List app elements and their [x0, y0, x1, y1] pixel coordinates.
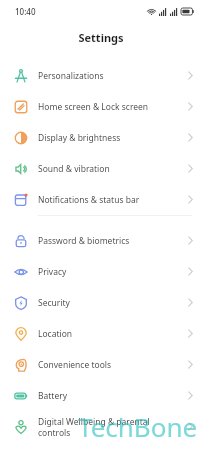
staticText: Convenience tools: [38, 359, 184, 371]
staticText: Personalizations: [38, 70, 184, 82]
button[interactable]: Location: [0, 318, 202, 349]
staticText: Location: [38, 328, 184, 340]
button[interactable]: Battery: [0, 380, 202, 411]
button[interactable]: Personalizations: [0, 60, 202, 91]
staticText: Battery: [38, 390, 184, 402]
staticText: Digital Wellbeing & parental controls: [38, 416, 184, 438]
staticText: TechBone: [78, 409, 198, 444]
staticText: Notifications & status bar: [38, 194, 184, 206]
button[interactable]: Convenience tools: [0, 349, 202, 380]
button[interactable]: Security: [0, 287, 202, 318]
button[interactable]: Digital Wellbeing & parental controls: [0, 411, 202, 442]
staticText: 10:40: [15, 6, 36, 17]
staticText: Sound & vibration: [38, 163, 184, 175]
button[interactable]: Notifications & status bar: [0, 184, 202, 215]
staticText: Password & biometrics: [38, 235, 184, 247]
staticText: Home screen & Lock screen: [38, 101, 184, 113]
staticText: Security: [38, 297, 184, 309]
button[interactable]: Home screen & Lock screen: [0, 91, 202, 122]
button[interactable]: Sound & vibration: [0, 153, 202, 184]
button[interactable]: Privacy: [0, 256, 202, 287]
button[interactable]: Display & brightness: [0, 122, 202, 153]
button[interactable]: Password & biometrics: [0, 225, 202, 256]
staticText: Display & brightness: [38, 132, 184, 144]
staticText: Privacy: [38, 266, 184, 278]
staticText: Settings: [78, 30, 124, 45]
